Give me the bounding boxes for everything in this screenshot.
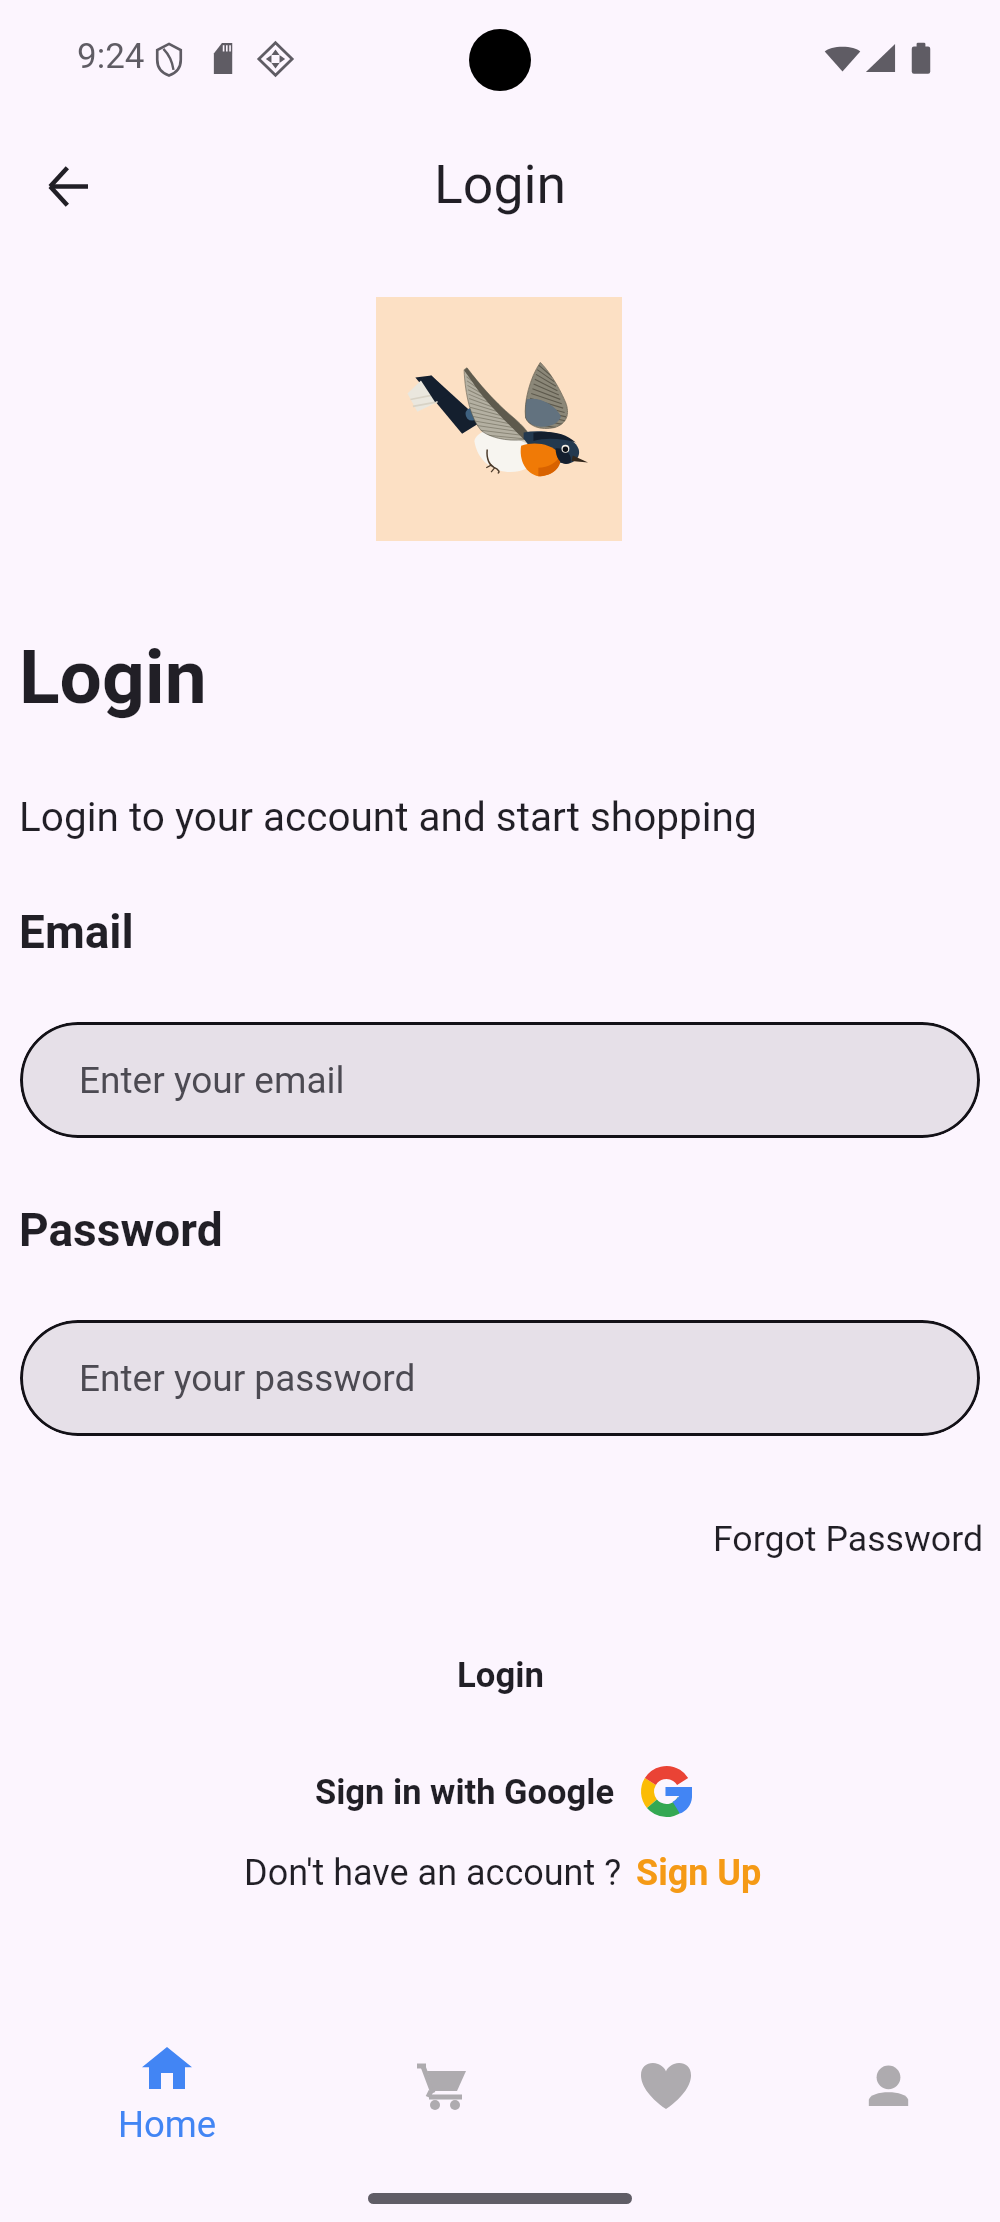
staticText: Sign in with Google <box>315 1772 615 1812</box>
staticText: Password <box>19 1203 223 1257</box>
button[interactable]: Cart <box>371 2026 511 2144</box>
staticText: Home <box>118 2103 217 2146</box>
button[interactable]: Home <box>82 2026 252 2156</box>
button[interactable]: Profile <box>823 2031 954 2140</box>
staticText: Login <box>434 153 567 216</box>
staticText: Don't have an account ? <box>244 1852 622 1894</box>
staticText: Enter your email <box>79 1059 345 1102</box>
staticText: Sign Up <box>636 1852 762 1894</box>
button[interactable]: Forgot Password <box>697 1502 1000 1576</box>
button[interactable]: Enter your password <box>20 1320 980 1436</box>
button[interactable]: Back <box>24 142 112 230</box>
button[interactable]: Sign Up <box>622 1842 776 1904</box>
staticText: 9:24 <box>77 36 145 77</box>
staticText: Email <box>19 905 134 959</box>
staticText: Login to your account and start shopping <box>19 793 757 840</box>
staticText: Forgot Password <box>713 1518 984 1560</box>
staticText: Enter your password <box>79 1357 416 1400</box>
staticText: Login <box>457 1655 544 1696</box>
staticText: Login <box>19 633 207 721</box>
button[interactable]: Sign in with Google <box>301 1754 706 1829</box>
button[interactable]: Enter your email <box>20 1022 980 1138</box>
button[interactable]: Favorites <box>596 2028 736 2143</box>
button[interactable]: Login <box>429 1637 572 1714</box>
